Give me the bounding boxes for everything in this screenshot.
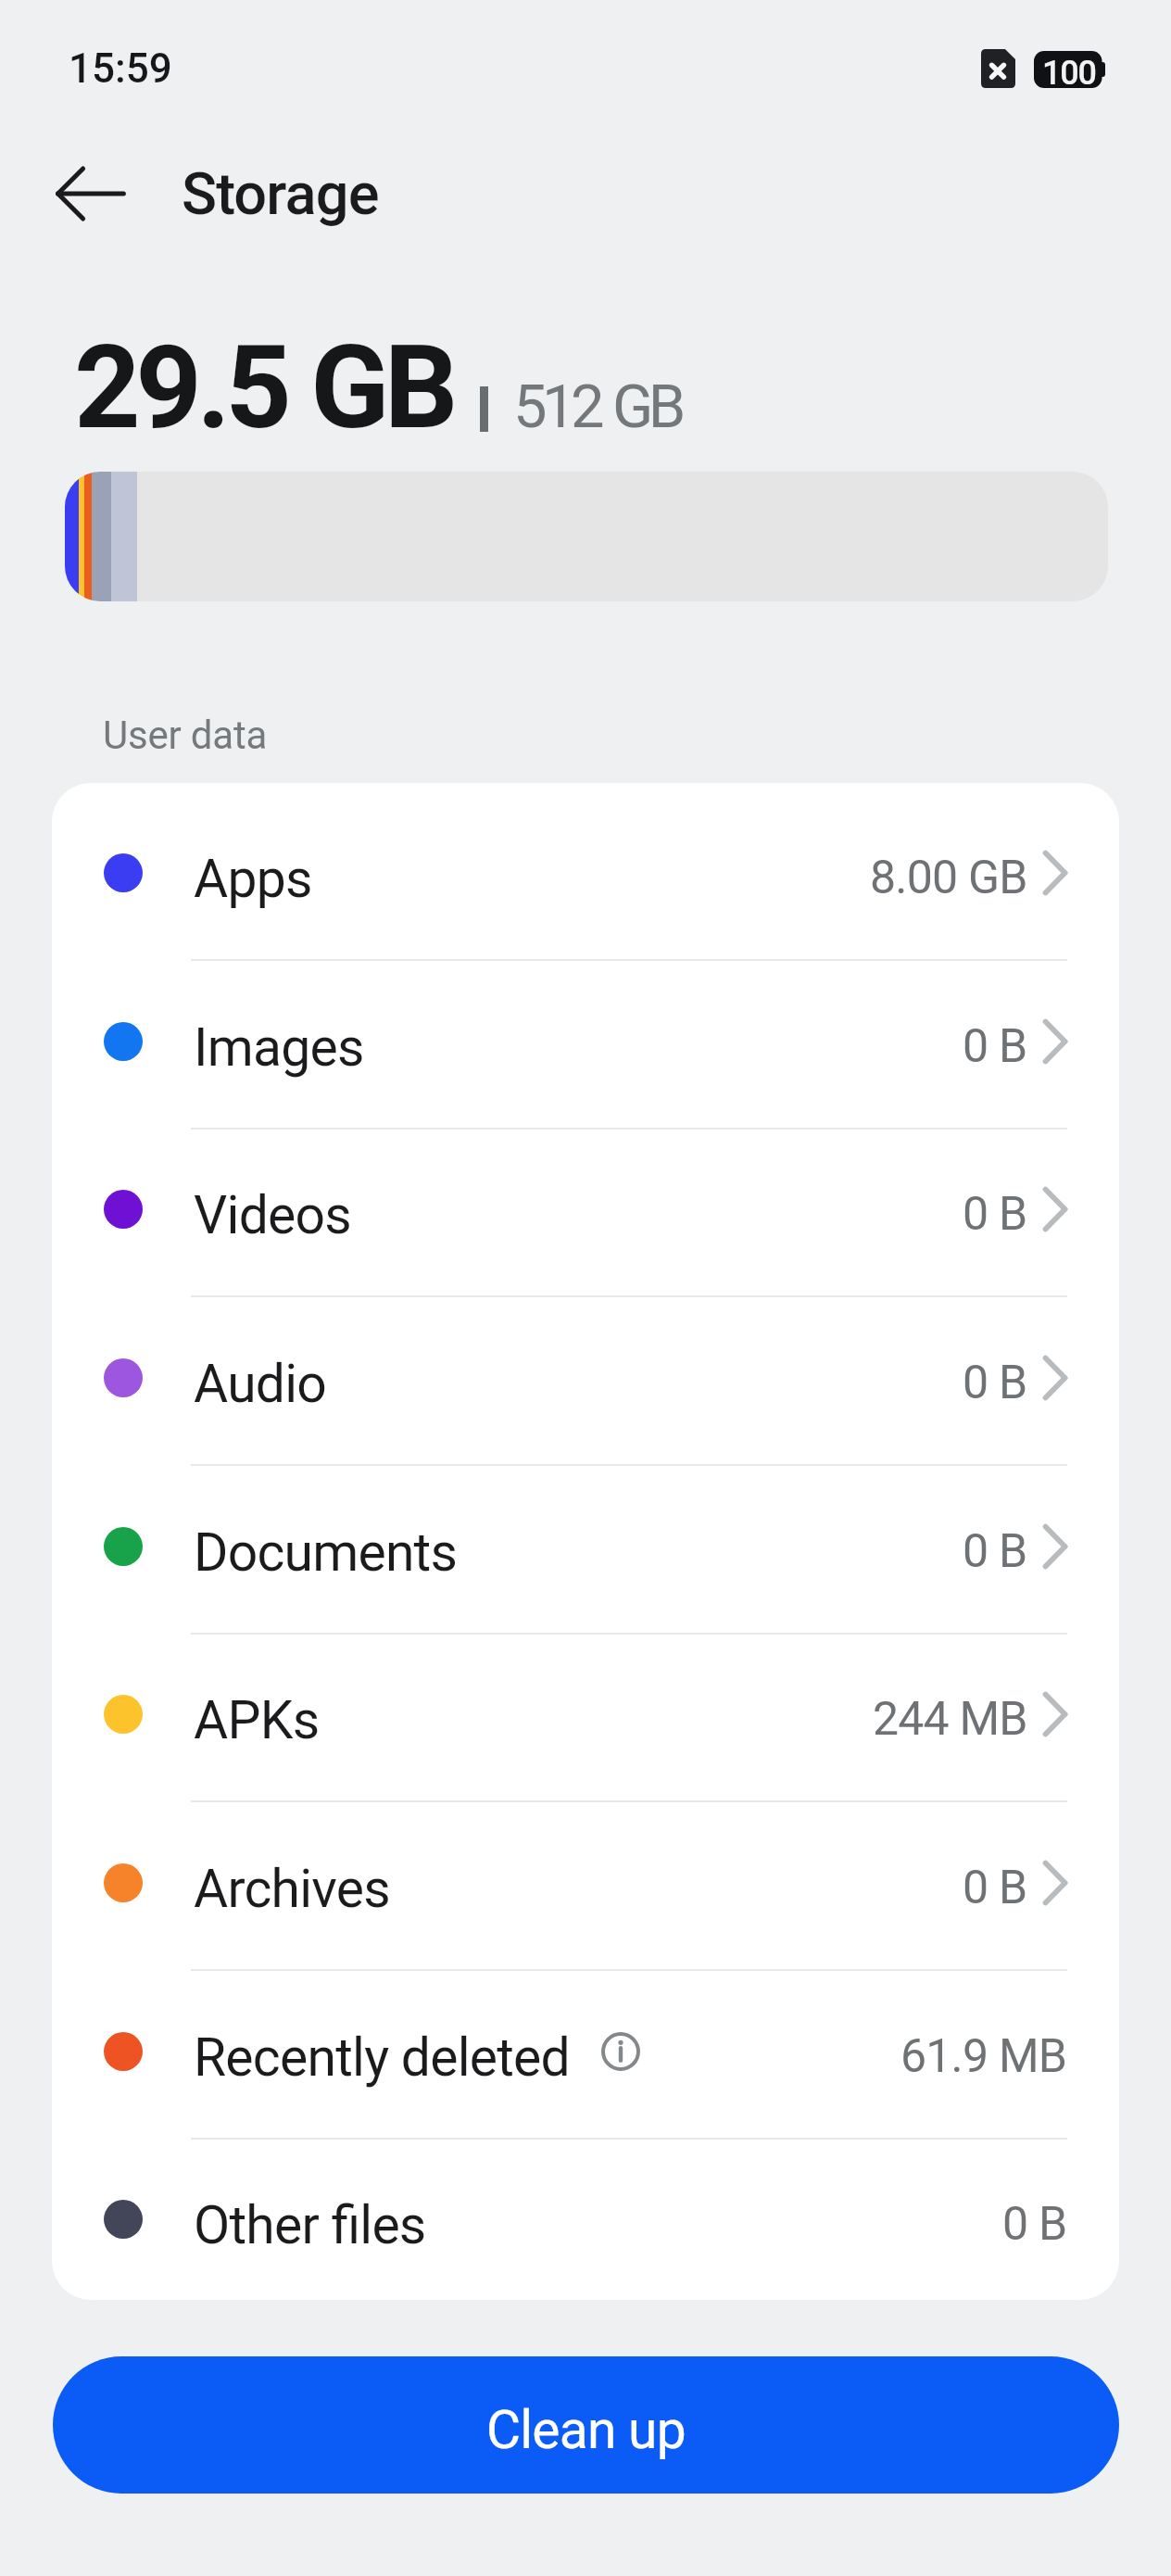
button[interactable]: More information	[601, 2032, 640, 2071]
button[interactable]: Clean up	[53, 2356, 1119, 2494]
button[interactable]: Documents	[52, 1462, 1119, 1631]
staticText: Clean up	[486, 2399, 686, 2461]
staticText: 8.00 GB	[870, 851, 1027, 905]
staticText: APKs	[194, 1689, 320, 1751]
staticText: 0 B	[963, 1356, 1027, 1410]
button[interactable]: APKs	[52, 1630, 1119, 1799]
staticText: 15:59	[69, 44, 172, 93]
staticText: GB	[612, 372, 681, 442]
button[interactable]: Audio	[52, 1294, 1119, 1462]
staticText: Storage	[182, 160, 379, 229]
staticText: 0 B	[963, 1187, 1027, 1242]
staticText: 100	[1042, 54, 1096, 91]
staticText: 0 B	[1002, 2197, 1067, 2252]
staticText: Archives	[194, 1858, 390, 1920]
staticText: Apps	[194, 848, 312, 910]
button[interactable]: Apps	[52, 789, 1119, 957]
button[interactable]: Other files	[52, 2135, 1119, 2300]
staticText: 244 MB	[873, 1692, 1027, 1747]
staticText: Recently deleted	[194, 2027, 570, 2089]
staticText: Audio	[194, 1353, 327, 1415]
button[interactable]: Back	[35, 165, 146, 222]
button[interactable]: Archives	[52, 1799, 1119, 1967]
staticText: 0 B	[963, 1861, 1027, 1915]
staticText: 29.5 GB	[74, 320, 454, 455]
staticText: 0 B	[963, 1524, 1027, 1579]
staticText: Images	[194, 1017, 364, 1079]
staticText: 512	[513, 372, 600, 442]
staticText: 61.9 MB	[900, 2029, 1067, 2084]
button[interactable]: Recently deleted	[52, 1967, 1119, 2136]
staticText: 0 B	[963, 1019, 1027, 1074]
staticText: Documents	[194, 1522, 458, 1584]
staticText: Other files	[194, 2194, 426, 2256]
button[interactable]: Videos	[52, 1125, 1119, 1294]
button[interactable]: Images	[52, 957, 1119, 1126]
staticText: Videos	[194, 1184, 351, 1246]
staticText: User data	[103, 713, 268, 758]
